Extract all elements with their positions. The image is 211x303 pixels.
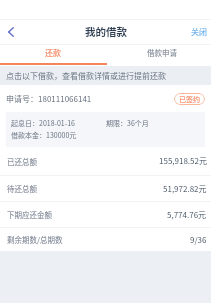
button[interactable]: 关闭 [185, 20, 211, 44]
button[interactable]: 借款申请 [105, 45, 211, 66]
staticText: 借款申请 [147, 47, 177, 58]
staticText: 9/36 [190, 234, 207, 246]
button[interactable]: 还款 [0, 45, 105, 66]
staticText: 期限：36个月 [106, 118, 149, 128]
button[interactable]: 剩余期数/总期数 [0, 228, 211, 251]
button[interactable]: 已还总额 [0, 147, 211, 175]
staticText: 已签约 [179, 94, 200, 104]
staticText: 还款 [45, 47, 61, 59]
staticText: 已还总额 [7, 156, 37, 167]
button[interactable]: 申请号：180111066141 [0, 85, 211, 251]
staticText: 借款本金：130000元 [11, 130, 77, 140]
button[interactable]: 下期应还金额 [0, 202, 211, 227]
button[interactable]: 待还总额 [0, 176, 211, 201]
staticText: 申请号：180111066141 [6, 93, 92, 105]
staticText: 155,918.52元 [159, 155, 207, 167]
staticText: 下期应还金额 [7, 209, 52, 220]
button[interactable]: Back [0, 21, 22, 43]
staticText: 点击以下借款，查看借款详情或进行提前还款 [6, 70, 166, 82]
staticText: 关闭 [191, 26, 207, 38]
staticText: 51,972.82元 [163, 183, 207, 195]
staticText: 起息日：2018-01-16 [11, 118, 75, 128]
staticText: 剩余期数/总期数 [7, 234, 63, 245]
staticText: 我的借款 [85, 24, 127, 39]
staticText: 待还总额 [7, 183, 37, 194]
staticText: 5,774.76元 [167, 209, 207, 221]
